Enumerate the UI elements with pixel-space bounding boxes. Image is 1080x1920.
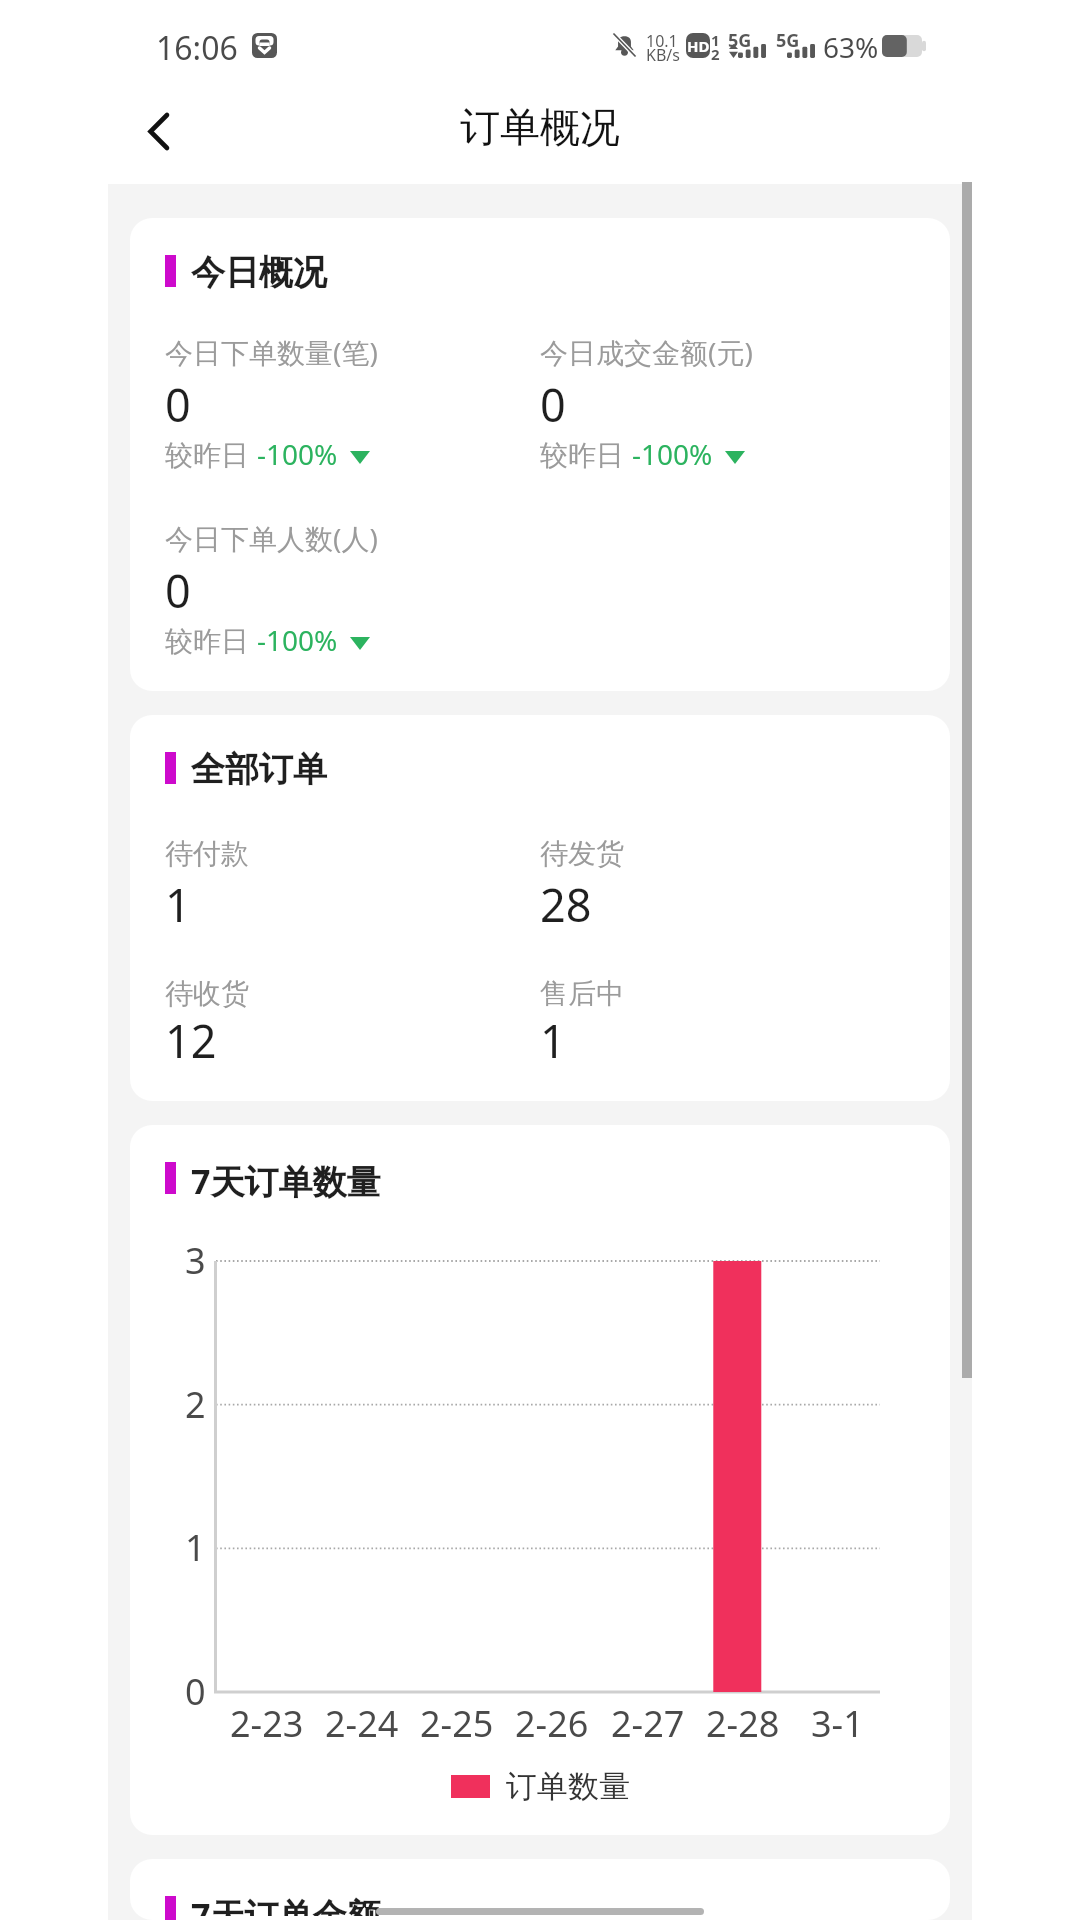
button[interactable]: 7天订单金额 [130, 1859, 950, 1920]
staticText: 0 [165, 374, 191, 435]
staticText: -100% [257, 435, 338, 473]
staticText: -100% [632, 435, 713, 473]
staticText: 全部订单 [191, 748, 327, 791]
staticText: 5G [776, 28, 800, 53]
staticText: 2-27 [611, 1699, 685, 1748]
staticText: 较昨日 [540, 435, 632, 473]
staticText: HD [687, 36, 710, 56]
staticText: 2-28 [706, 1699, 780, 1748]
staticText: 3-1 [811, 1699, 864, 1748]
staticText: 订单概况 [460, 102, 620, 152]
staticText: 2-24 [325, 1699, 399, 1748]
staticText: 今日概况 [191, 251, 327, 294]
staticText: 63% [823, 28, 879, 66]
staticText: 1 [185, 1523, 206, 1572]
staticText: -100% [257, 621, 338, 659]
staticText: 今日下单数量(笔) [165, 333, 378, 371]
staticText: 2 [711, 44, 720, 64]
staticText: 0 [185, 1667, 206, 1716]
staticText: 2-26 [515, 1699, 589, 1748]
staticText: 2 [185, 1380, 206, 1429]
staticText: 今日成交金额(元) [540, 333, 753, 371]
staticText: 12 [165, 1010, 217, 1071]
staticText: 售后中 [540, 976, 624, 1011]
button[interactable]: 今日概况 [130, 218, 950, 691]
button[interactable]: Back [118, 91, 198, 171]
staticText: 3 [185, 1236, 206, 1285]
staticText: 较昨日 [165, 435, 257, 473]
staticText: 较昨日 [165, 621, 257, 659]
button[interactable]: 今日下单数量(笔) [165, 337, 505, 477]
button[interactable]: 待付款 [165, 840, 505, 930]
staticText: 5G [728, 28, 752, 53]
staticText: 16:06 [156, 26, 238, 70]
staticText: 待发货 [540, 836, 624, 871]
staticText: 1 [540, 1010, 566, 1071]
button[interactable]: 订单数量 [447, 1765, 634, 1808]
button[interactable]: 待收货 [165, 980, 505, 1070]
button[interactable]: 待发货 [540, 840, 880, 930]
staticText: 订单数量 [506, 1767, 630, 1806]
staticText: 7天订单金额 [191, 1892, 381, 1916]
staticText: 0 [165, 560, 191, 621]
staticText: 2-23 [230, 1699, 304, 1748]
staticText: 0 [540, 374, 566, 435]
button[interactable]: 今日下单人数(人) [165, 523, 505, 663]
button[interactable]: 今日成交金额(元) [540, 337, 880, 477]
staticText: 1 [711, 30, 720, 50]
staticText: 今日下单人数(人) [165, 519, 378, 557]
staticText: 2-25 [420, 1699, 494, 1748]
staticText: KB/s [646, 44, 680, 66]
button[interactable]: 7天订单数量 [130, 1125, 950, 1835]
staticText: 待付款 [165, 836, 249, 871]
staticText: 待收货 [165, 976, 249, 1011]
staticText: 10.1 [646, 30, 678, 52]
staticText: 1 [165, 874, 191, 935]
staticText: 28 [540, 874, 592, 935]
button[interactable]: 售后中 [540, 980, 880, 1070]
button[interactable]: 全部订单 [130, 715, 950, 1101]
staticText: 7天订单数量 [191, 1158, 381, 1204]
